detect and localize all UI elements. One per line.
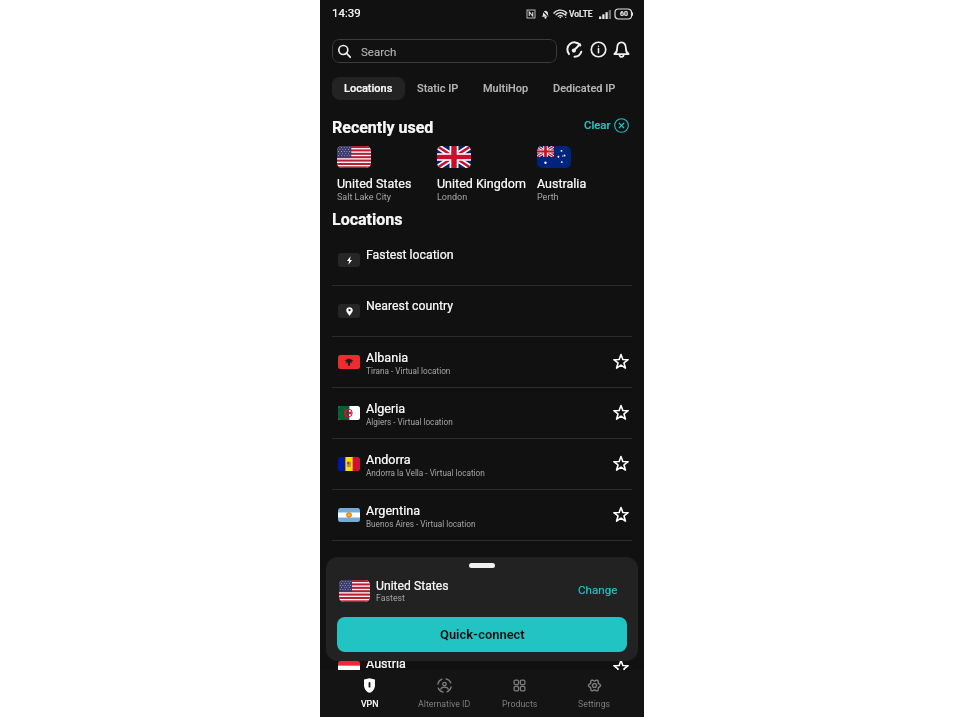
staticText: Change <box>578 583 618 597</box>
button[interactable]: Quick-connect <box>337 617 627 652</box>
staticText: VPN <box>361 699 379 709</box>
button[interactable]: Favorite <box>613 456 629 472</box>
staticText: Search <box>361 45 397 58</box>
staticText: MultiHop <box>483 82 529 95</box>
button[interactable]: Armenia <box>320 541 644 591</box>
staticText: Quick-connect <box>440 627 525 642</box>
staticText: Tirana - Virtual location <box>366 366 451 376</box>
staticText: United States <box>376 579 449 593</box>
button[interactable]: Favorite <box>613 507 629 523</box>
button[interactable]: Search <box>332 39 557 63</box>
staticText: Alternative ID <box>418 699 471 709</box>
button[interactable]: Settings <box>557 670 632 717</box>
staticText: Australia <box>366 605 416 620</box>
staticText: Dedicated IP <box>553 82 616 95</box>
button[interactable]: VPN <box>332 670 407 717</box>
staticText: Settings <box>578 699 611 709</box>
button[interactable]: Change <box>578 583 618 597</box>
button[interactable]: Favorite <box>613 405 629 421</box>
staticText: Australia <box>537 176 587 191</box>
button[interactable]: MultiHop <box>471 77 541 100</box>
staticText: 14:39 <box>332 6 361 19</box>
button[interactable]: Favorite <box>613 354 629 370</box>
staticText: Andorra la Vella - Virtual location <box>366 468 485 478</box>
button[interactable]: Locations <box>332 77 405 100</box>
staticText: Algeria <box>366 401 406 416</box>
button[interactable]: Argentina <box>320 490 644 540</box>
staticText: Clear <box>584 119 611 132</box>
staticText: United Kingdom <box>437 176 526 191</box>
staticText: Nearest country <box>366 299 454 313</box>
button[interactable]: Speed test <box>564 39 585 60</box>
staticText: Algiers - Virtual location <box>366 417 453 427</box>
button[interactable]: Info <box>588 39 609 60</box>
button[interactable]: Algeria <box>320 388 644 438</box>
button[interactable]: Nearest country <box>320 286 644 336</box>
button[interactable]: Alternative ID <box>407 670 482 717</box>
staticText: 60 <box>620 10 628 18</box>
staticText: Perth <box>537 192 559 203</box>
staticText: Products <box>502 699 538 709</box>
staticText: Austria <box>366 656 406 671</box>
button[interactable]: Notifications <box>611 39 632 60</box>
staticText: Vienna <box>366 672 392 682</box>
staticText: Buenos Aires - Virtual location <box>366 519 476 529</box>
staticText: Argentina <box>366 503 421 518</box>
button[interactable]: Favorite <box>613 660 629 676</box>
staticText: Salt Lake City <box>337 192 392 203</box>
button[interactable]: Favorite <box>613 609 629 625</box>
button[interactable]: Static IP <box>405 77 471 100</box>
staticText: Armenia <box>366 554 414 569</box>
button[interactable]: Australia <box>537 146 633 203</box>
staticText: Albania <box>366 350 409 365</box>
staticText: United States <box>337 176 412 191</box>
staticText: Static IP <box>417 82 459 95</box>
button[interactable]: Albania <box>320 337 644 387</box>
button[interactable]: United Kingdom <box>437 146 533 203</box>
button[interactable]: Andorra <box>320 439 644 489</box>
button[interactable]: Products <box>482 670 557 717</box>
staticText: Locations <box>332 210 403 229</box>
button[interactable]: Dedicated IP <box>541 77 628 100</box>
button[interactable]: Fastest location <box>320 235 644 285</box>
staticText: Locations <box>344 82 393 95</box>
button[interactable]: United States <box>337 146 433 203</box>
staticText: VoLTE <box>569 9 593 19</box>
staticText: Recently used <box>332 118 434 137</box>
button[interactable]: Austria <box>320 643 644 693</box>
button[interactable]: Australia <box>320 592 644 642</box>
staticText: Fastest location <box>366 248 454 262</box>
staticText: London <box>437 192 468 203</box>
staticText: Fastest <box>376 593 406 603</box>
staticText: Andorra <box>366 452 411 467</box>
button[interactable]: Clear <box>584 118 629 133</box>
